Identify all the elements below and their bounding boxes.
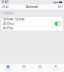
staticText: Back <box>3 5 8 9</box>
button[interactable]: Apps <box>32 63 48 72</box>
button[interactable]: Edit <box>57 4 64 10</box>
staticText: GENERAL <box>3 11 14 15</box>
button[interactable]: AirDrop <box>2 22 62 26</box>
staticText: 9:41 <box>2 0 9 4</box>
staticText: Apps <box>38 68 42 70</box>
button[interactable]: Software Update <box>2 17 62 21</box>
staticText: Software Update <box>3 17 25 21</box>
staticText: General <box>26 5 38 9</box>
staticText: Search <box>53 68 59 70</box>
staticText: Games <box>21 68 26 70</box>
button[interactable]: Games <box>16 63 32 72</box>
button[interactable]: Search <box>48 63 64 72</box>
staticText: Today <box>5 68 10 70</box>
staticText: Edit <box>57 5 62 9</box>
button[interactable]: Today <box>0 63 16 72</box>
button[interactable]: AirPlay <box>2 26 62 30</box>
staticText: AirPlay <box>3 27 12 30</box>
button[interactable]: Back <box>0 4 9 10</box>
staticText: AirDrop <box>3 22 14 25</box>
